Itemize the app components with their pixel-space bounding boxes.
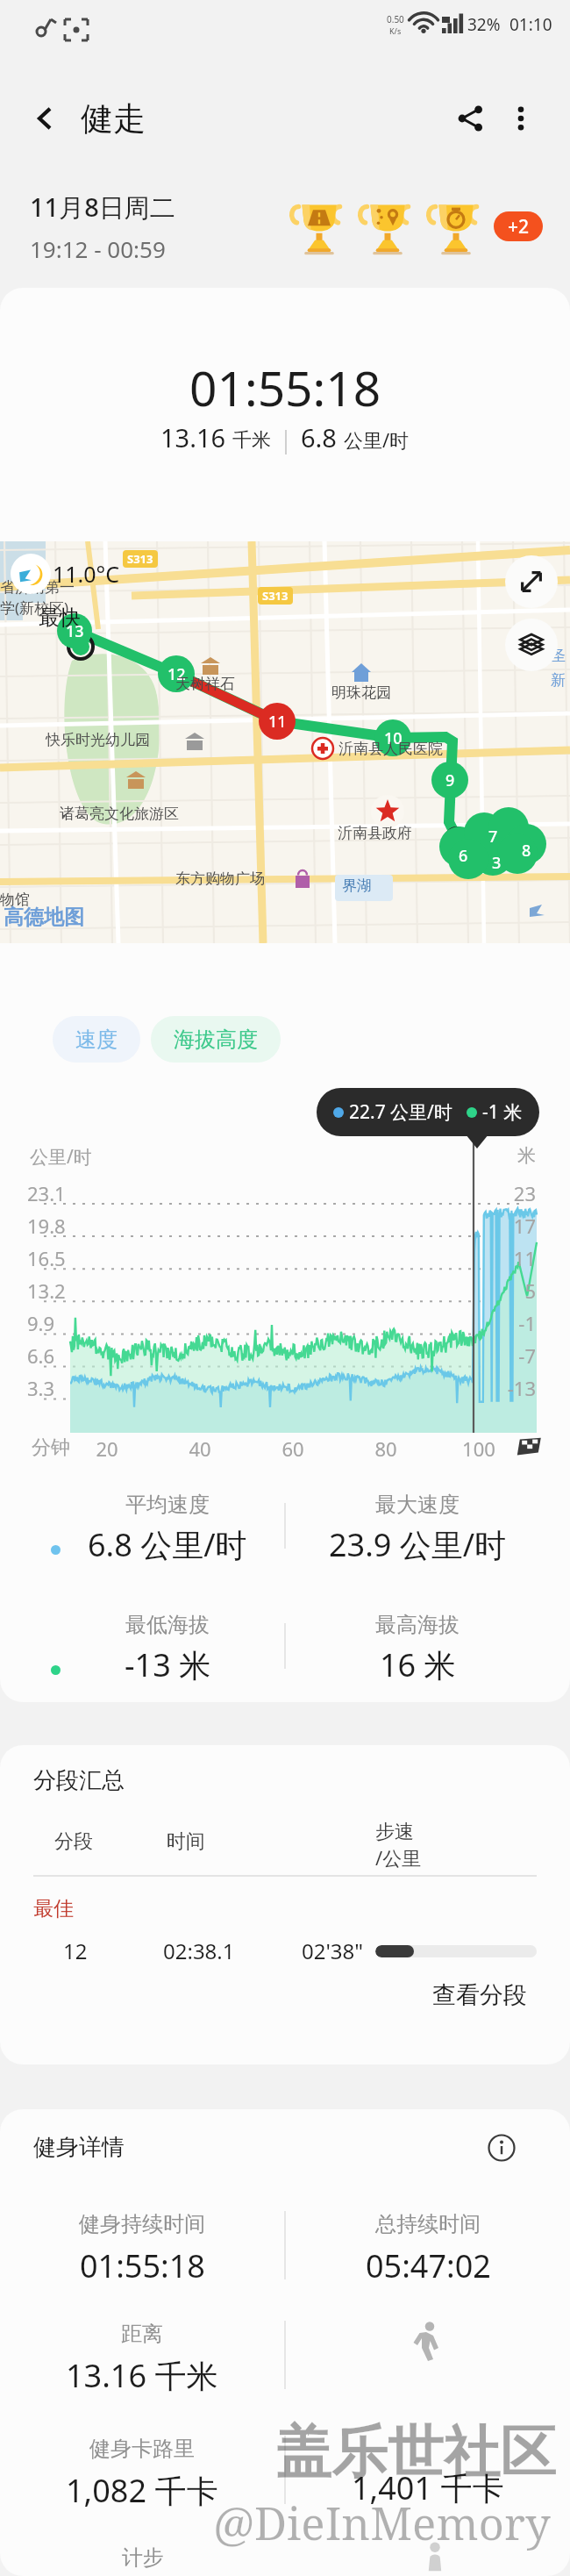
staticText: 19.8 [27,1213,66,1239]
staticText: 分段 [54,1829,93,1854]
staticText: 5 [483,1277,536,1304]
staticText: 13.16 [160,420,232,454]
staticText: @DieInMemory [213,2492,551,2552]
staticText: 省沂南第一 [0,578,75,597]
staticText: 时间 [167,1829,205,1854]
staticText: 23.1 [27,1180,66,1206]
staticText: 最佳 [33,1896,74,1921]
staticText: 物馆 [0,891,30,909]
staticText: 16.5 [27,1245,66,1271]
button[interactable]: +2 [494,211,543,241]
staticText: 天树祥石 [175,675,235,693]
staticText: 沂南县政府 [338,824,412,842]
staticText: 快乐时光幼儿园 [46,731,150,749]
staticText: 最低海拔 [125,1612,210,1638]
staticText: 01:55:18 [80,2244,205,2287]
button[interactable]: Info [481,2127,523,2169]
staticText: 01:55:18 [189,354,381,420]
staticText: 23 [483,1180,536,1206]
staticText: 9.9 [27,1310,55,1336]
staticText: 16 米 [380,1643,456,1686]
staticText: 8 [522,840,531,862]
staticText: 健走 [81,98,146,140]
staticText: 最大速度 [375,1492,460,1518]
staticText: 17 [483,1213,536,1239]
staticText: 12 [167,663,186,685]
staticText: 6.6 [27,1342,55,1369]
button[interactable]: 海拔高度 [151,1016,281,1063]
staticText: 平均速度 [125,1492,210,1518]
staticText: 明珠花园 [331,683,391,702]
staticText: 13 [66,620,84,642]
staticText: S313 [127,551,153,567]
staticText: 05:47:02 [366,2244,491,2287]
staticText: 11.0°C [53,559,120,589]
staticText: 新 [551,671,566,690]
button[interactable]: Back [23,97,67,140]
button[interactable]: Share [447,96,493,141]
staticText: 12 [63,1936,88,1965]
staticText: 02'38" [302,1936,364,1965]
staticText: 健身持续时间 [79,2211,205,2237]
staticText: -13 米 [125,1643,211,1686]
staticText: 11月8日周二 [30,190,175,225]
staticText: 11 [483,1245,536,1271]
staticText: K/s [389,25,402,36]
staticText: 80 [365,1435,407,1462]
staticText: -7 [483,1342,536,1369]
staticText: 公里/时 [344,426,410,453]
staticText: 40 [179,1435,221,1462]
button[interactable]: 速度 [53,1016,140,1063]
staticText: 海拔高度 [174,1027,258,1053]
staticText: 学(新校区) [0,597,69,618]
staticText: 高德地图 [4,905,84,930]
staticText: -1 [483,1310,536,1336]
staticText: 1,401 千卡 [352,2466,504,2509]
staticText: 沂南县人民医院 [338,740,443,758]
staticText: -1 米 [482,1099,523,1125]
staticText: 9 [445,769,455,791]
staticText: 步速 [375,1820,414,1844]
staticText: 公里/时 [30,1144,92,1170]
staticText: 6.8 公里/时 [88,1523,247,1566]
staticText: 3 [492,852,502,874]
staticText: 分段汇总 [33,1766,125,1795]
staticText: 32% [467,13,501,36]
staticText: 02:38.1 [163,1936,235,1965]
staticText: 3.3 [27,1375,55,1401]
button[interactable]: Map layers [505,619,558,671]
staticText: 最快 [39,605,81,631]
staticText: 界湖 [342,877,372,895]
button[interactable]: 查看分段 [425,1973,534,2017]
staticText: 01:10 [509,13,552,36]
staticText: S313 [262,588,289,604]
staticText: 10 [384,727,403,749]
staticText: 11 [268,711,287,733]
button[interactable]: Expand map [505,555,558,608]
staticText: 盖乐世社区 [275,2417,556,2488]
staticText: 6 [459,845,468,867]
staticText: 13.2 [27,1277,66,1304]
staticText: 最高海拔 [375,1612,460,1638]
staticText: +2 [508,214,530,240]
staticText: 查看分段 [432,1980,527,2010]
staticText: 千米 [232,428,271,453]
staticText: 19:12 - 00:59 [30,233,166,264]
staticText: 60 [272,1435,314,1462]
staticText: 总持续时间 [375,2211,481,2237]
staticText: 20 [86,1435,128,1462]
staticText: 23.9 公里/时 [329,1523,507,1566]
staticText: /公里 [375,1844,422,1871]
staticText: 13.16 千米 [66,2354,218,2397]
staticText: 0.50 [387,13,404,25]
staticText: -13 [483,1375,536,1401]
staticText: 东方购物广场 [175,869,265,888]
staticText: 速度 [75,1027,118,1053]
staticText: 22.7 公里/时 [349,1099,452,1125]
staticText: 1,082 千卡 [66,2469,218,2512]
staticText: 7 [488,826,498,848]
button[interactable]: More options [498,96,544,141]
staticText: 计步 [122,2544,164,2571]
staticText: 米 [483,1144,536,1167]
staticText: 健身卡路里 [89,2436,195,2462]
